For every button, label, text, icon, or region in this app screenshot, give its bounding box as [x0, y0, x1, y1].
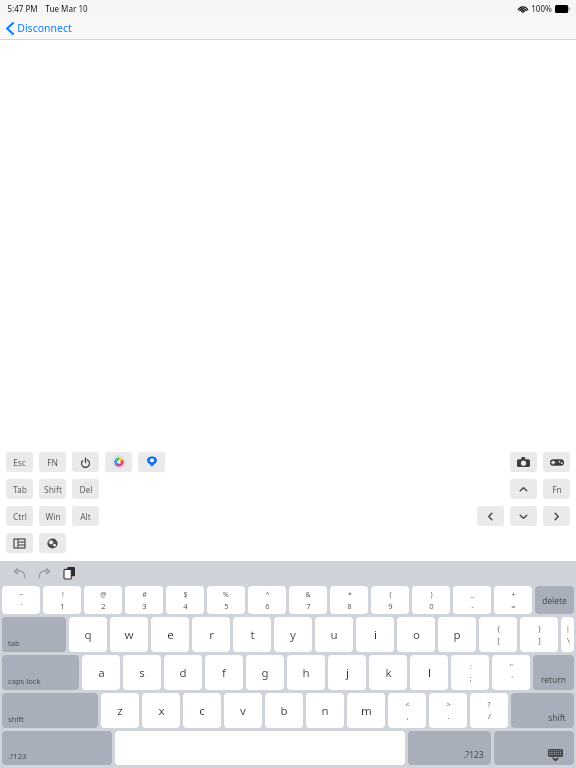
button[interactable]: Shift [39, 479, 66, 499]
staticText: 3 [142, 601, 147, 611]
button[interactable]: Game controller [543, 452, 570, 472]
staticText: e [167, 627, 174, 643]
button[interactable]: + [494, 586, 532, 614]
staticText: . [447, 711, 450, 721]
button[interactable]: { [479, 617, 517, 652]
button[interactable]: z [101, 693, 139, 728]
button[interactable]: c [183, 693, 221, 728]
staticText: n [321, 703, 329, 719]
staticText: Tue Mar 10 [45, 3, 88, 14]
button[interactable]: Del [72, 479, 99, 499]
button[interactable]: x [142, 693, 180, 728]
button[interactable]: Keyboard layout [6, 533, 33, 553]
button[interactable]: Win [39, 506, 66, 526]
button[interactable]: Language [39, 533, 66, 553]
button[interactable]: i [356, 617, 394, 652]
button[interactable]: < [388, 693, 426, 728]
button[interactable]: .?123 [408, 731, 491, 765]
staticText: # [142, 590, 147, 600]
button[interactable]: ^ [248, 586, 286, 614]
button[interactable]: Tab [6, 479, 33, 499]
button[interactable]: y [274, 617, 312, 652]
button[interactable]: Undo [9, 563, 29, 583]
button[interactable]: h [287, 655, 325, 690]
button[interactable]: > [429, 693, 467, 728]
button[interactable]: $ [166, 586, 204, 614]
staticText: delete [542, 595, 567, 606]
staticText: ( [389, 590, 392, 600]
staticText: tab [8, 638, 20, 648]
button[interactable]: Esc [6, 452, 33, 472]
button[interactable]: : [451, 655, 489, 690]
button[interactable]: # [125, 586, 163, 614]
button[interactable]: n [306, 693, 344, 728]
button[interactable]: ~ [2, 586, 40, 614]
button[interactable]: l [410, 655, 448, 690]
button[interactable]: .?123 [2, 731, 112, 765]
button[interactable]: return [533, 655, 574, 690]
button[interactable]: tab [2, 617, 66, 652]
button[interactable]: _ [453, 586, 491, 614]
button[interactable]: u [315, 617, 353, 652]
button[interactable]: p [438, 617, 476, 652]
button[interactable]: q [69, 617, 107, 652]
button[interactable]: w [110, 617, 148, 652]
button[interactable]: Down [510, 506, 537, 526]
staticText: < [405, 700, 410, 710]
button[interactable]: Paste [59, 563, 79, 583]
button[interactable]: Redo [34, 563, 54, 583]
button[interactable]: FN [39, 452, 66, 472]
button[interactable]: shift [2, 693, 98, 728]
button[interactable]: Location [138, 452, 165, 472]
button[interactable]: Up [510, 479, 537, 499]
button[interactable]: Right [543, 506, 570, 526]
button[interactable]: r [192, 617, 230, 652]
button[interactable]: Hide keyboard [494, 731, 574, 765]
staticText: 5:47 PM [7, 3, 38, 14]
staticText: k [385, 665, 392, 681]
button[interactable]: k [369, 655, 407, 690]
button[interactable]: Ctrl [6, 506, 33, 526]
button[interactable]: shift [511, 693, 574, 728]
button[interactable]: " [492, 655, 530, 690]
button[interactable]: b [265, 693, 303, 728]
button[interactable]: caps lock [2, 655, 79, 690]
button[interactable]: v [224, 693, 262, 728]
button[interactable]: d [164, 655, 202, 690]
button[interactable]: } [520, 617, 558, 652]
button[interactable]: | [561, 617, 574, 652]
button[interactable]: e [151, 617, 189, 652]
staticText: ! [62, 590, 64, 600]
button[interactable]: Disconnect [0, 18, 80, 38]
button[interactable]: delete [535, 586, 574, 614]
staticText: ' [511, 673, 513, 683]
button[interactable]: j [328, 655, 366, 690]
button[interactable]: @ [84, 586, 122, 614]
button[interactable]: Left [477, 506, 504, 526]
button[interactable]: Fn [543, 479, 570, 499]
button[interactable]: ) [412, 586, 450, 614]
button[interactable]: f [205, 655, 243, 690]
staticText: w [124, 627, 134, 643]
button[interactable]: ? [470, 693, 508, 728]
button[interactable]: ! [43, 586, 81, 614]
button[interactable]: & [289, 586, 327, 614]
button[interactable]: * [330, 586, 368, 614]
staticText: caps lock [8, 676, 41, 686]
button[interactable]: a [82, 655, 120, 690]
staticText: 5 [224, 601, 229, 611]
button[interactable]: Camera [510, 452, 537, 472]
button[interactable]: t [233, 617, 271, 652]
button[interactable]: o [397, 617, 435, 652]
button[interactable]: Colors [105, 452, 132, 472]
button[interactable]: Power [72, 452, 99, 472]
button[interactable]: m [347, 693, 385, 728]
button[interactable]: s [123, 655, 161, 690]
staticText: ~ [19, 590, 24, 600]
button[interactable]: g [246, 655, 284, 690]
button[interactable]: % [207, 586, 245, 614]
button[interactable]: Alt [72, 506, 99, 526]
staticText: Alt [80, 511, 91, 522]
button[interactable]: ( [371, 586, 409, 614]
